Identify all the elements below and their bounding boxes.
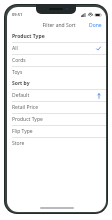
staticText: Product Type: [12, 116, 100, 123]
other: Selected: [96, 46, 101, 51]
button[interactable]: Cords: [7, 55, 106, 66]
staticText: 09:51: [12, 12, 23, 17]
staticText: Done: [89, 22, 102, 29]
button[interactable]: Store: [7, 138, 106, 149]
staticText: Toys: [12, 69, 100, 76]
staticText: Cords: [12, 57, 100, 64]
button[interactable]: Retail Price: [7, 102, 106, 113]
staticText: All: [12, 45, 96, 52]
button[interactable]: Done: [85, 20, 106, 31]
button[interactable]: Product Type: [7, 114, 106, 125]
button[interactable]: Default: [7, 90, 106, 101]
staticText: Default: [12, 92, 97, 99]
staticText: Retail Price: [12, 104, 100, 111]
button[interactable]: Toys: [7, 67, 106, 78]
other: Sort ascending: [97, 93, 101, 99]
staticText: Store: [12, 140, 100, 147]
button[interactable]: All: [7, 43, 106, 54]
staticText: Sort by: [12, 80, 30, 87]
staticText: Flip Type: [12, 128, 100, 135]
staticText: Filter and Sort: [42, 22, 76, 29]
staticText: Product Type: [12, 33, 45, 40]
button[interactable]: Flip Type: [7, 126, 106, 137]
